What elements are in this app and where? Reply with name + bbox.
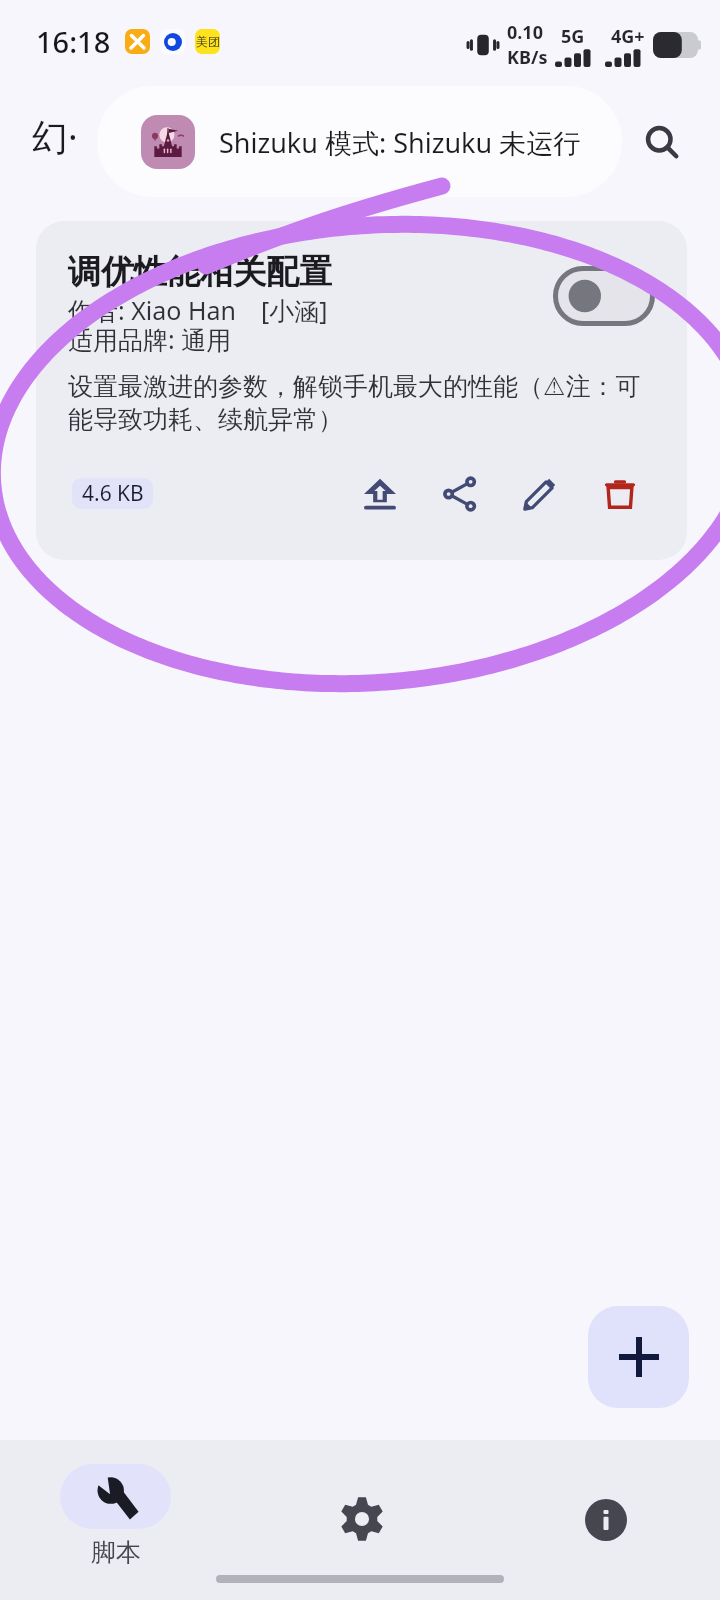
staticText: Shizuku 模式: Shizuku 未运行: [219, 124, 581, 161]
staticText: 0.10: [507, 20, 543, 45]
button[interactable]: Share: [434, 468, 486, 520]
staticText: 幻·: [32, 112, 78, 161]
button[interactable]: Search: [630, 110, 694, 174]
staticText: 4.6 KB: [82, 479, 144, 508]
staticText: 适用品牌: 通用: [68, 322, 232, 356]
staticText: KB/s: [507, 45, 548, 70]
staticText: 作者: Xiao Han [小涵]: [68, 293, 328, 327]
staticText: 5G: [561, 24, 585, 49]
button[interactable]: About: [485, 1440, 720, 1600]
button[interactable]: Settings: [241, 1440, 481, 1600]
button[interactable]: Shizuku 模式: Shizuku 未运行: [97, 86, 622, 197]
button[interactable]: Delete: [594, 468, 646, 520]
staticText: 美团: [196, 34, 220, 49]
button[interactable]: Edit: [514, 468, 566, 520]
staticText: 脚本: [91, 1537, 141, 1568]
button[interactable]: 调优性能相关配置: [36, 221, 687, 560]
button[interactable]: Scripts: [0, 1440, 235, 1600]
staticText: 4G+: [611, 24, 645, 49]
button[interactable]: Upload: [354, 468, 406, 520]
button[interactable]: Add: [588, 1306, 689, 1408]
staticText: 16:18: [36, 22, 111, 61]
staticText: 设置最激进的参数，解锁手机最大的性能（⚠注：可能导致功耗、续航异常）: [68, 371, 653, 435]
staticText: 调优性能相关配置: [68, 251, 332, 293]
